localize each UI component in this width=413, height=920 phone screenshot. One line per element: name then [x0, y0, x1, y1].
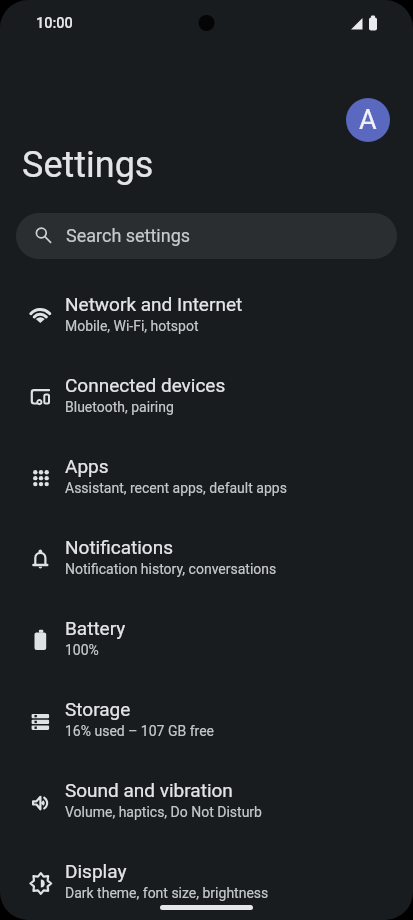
button[interactable]: Apps [0, 435, 413, 516]
staticText: Settings [22, 144, 154, 186]
staticText: 100% [65, 642, 99, 658]
staticText: Search settings [66, 225, 191, 246]
staticText: Sound and vibration [65, 779, 233, 801]
button[interactable]: Display [0, 840, 413, 920]
staticText: Notifications [65, 536, 174, 558]
button[interactable]: Notifications [0, 516, 413, 597]
staticText: Battery [65, 617, 126, 639]
staticText: A [359, 104, 377, 136]
button[interactable]: Storage [0, 678, 413, 759]
staticText: Mobile, Wi-Fi, hotspot [65, 318, 199, 334]
staticText: Apps [65, 455, 109, 477]
staticText: Connected devices [65, 374, 226, 396]
staticText: Display [65, 860, 127, 882]
button[interactable]: Connected devices [0, 354, 413, 435]
staticText: Assistant, recent apps, default apps [65, 480, 287, 496]
staticText: Network and Internet [65, 293, 243, 315]
button[interactable]: Network and Internet [0, 273, 413, 354]
staticText: Bluetooth, pairing [65, 399, 174, 415]
button[interactable]: A [346, 98, 390, 142]
button[interactable]: Sound and vibration [0, 759, 413, 840]
staticText: Volume, haptics, Do Not Disturb [65, 804, 262, 820]
staticText: Notification history, conversations [65, 561, 277, 577]
staticText: 16% used – 107 GB free [65, 723, 214, 739]
button[interactable]: Battery [0, 597, 413, 678]
staticText: Storage [65, 698, 131, 720]
staticText: 10:00 [36, 15, 73, 32]
staticText: Dark theme, font size, brightness [65, 885, 269, 901]
button[interactable]: Search settings [16, 213, 397, 259]
